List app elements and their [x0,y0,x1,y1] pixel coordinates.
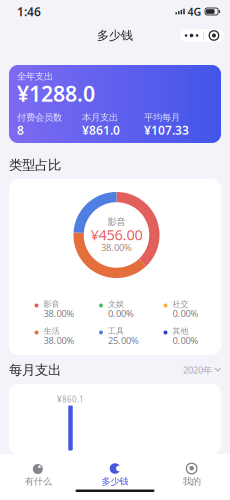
staticText: 2020年 [183,364,212,376]
staticText: 全年支出 [17,71,53,82]
button[interactable]: More [180,29,203,41]
staticText: 4G [188,4,202,19]
staticText: 0.00% [172,307,198,320]
staticText: 25.00% [108,334,139,347]
staticText: ¥456.00 [90,225,142,244]
staticText: 多少钱 [101,476,128,487]
button[interactable]: 有什么 [0,459,77,489]
staticText: ¥1288.0 [17,79,95,108]
staticText: 38.00% [43,307,74,320]
staticText: 生活 [43,326,59,336]
staticText: 其他 [172,326,188,336]
button[interactable]: 2020年 [183,365,221,375]
staticText: 8 [17,122,24,138]
staticText: 1:46 [17,3,41,19]
staticText: 社交 [172,299,188,309]
staticText: 38.00% [43,334,74,347]
staticText: 多少钱 [97,28,133,43]
staticText: 38.00% [101,241,132,254]
staticText: 类型占比 [9,157,61,173]
button[interactable]: Close [204,29,224,41]
button[interactable]: 多少钱 [77,459,153,489]
staticText: 有什么 [25,476,52,487]
staticText: 工具 [108,326,124,336]
staticText: 0.00% [108,307,134,320]
staticText: 本月支出 [82,112,118,123]
staticText: 每月支出 [9,362,61,378]
staticText: 影音 [107,216,125,228]
staticText: ¥861.0 [82,122,120,138]
staticText: 付费会员数 [17,112,62,123]
staticText: 0.00% [172,334,198,347]
staticText: 平均每月 [144,112,180,123]
button[interactable]: 我的 [153,459,230,489]
staticText: ¥860.1 [57,394,84,405]
staticText: 文娱 [108,299,124,309]
staticText: ¥107.33 [144,122,189,138]
staticText: 我的 [183,476,201,487]
staticText: 影音 [43,299,59,309]
